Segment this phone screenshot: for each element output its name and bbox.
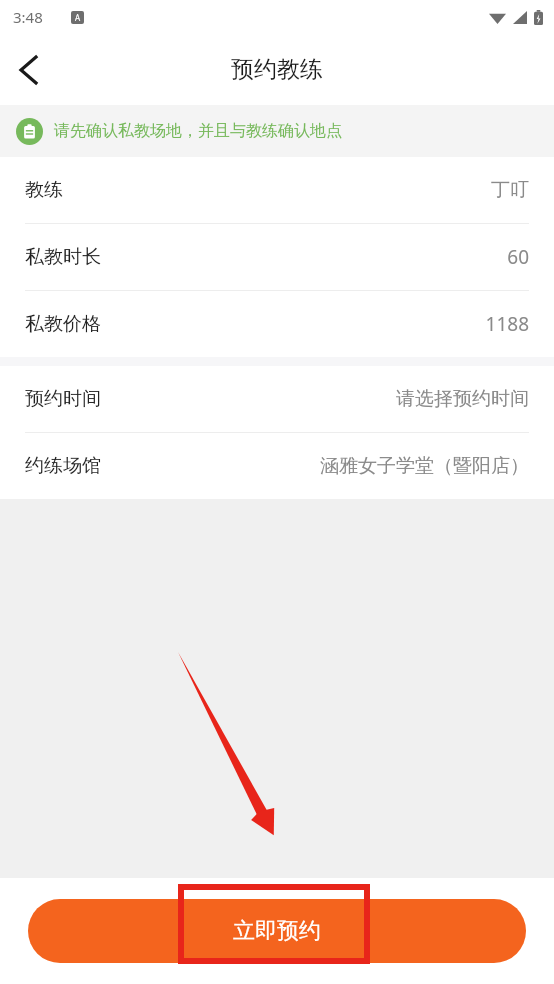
staticText: 立即预约 <box>233 917 321 945</box>
staticText: 1188 <box>485 311 529 337</box>
staticText: 预约时间 <box>25 387 101 411</box>
staticText: 约练场馆 <box>25 454 101 478</box>
staticText: 3:48 <box>13 7 43 27</box>
staticText: 请先确认私教场地，并且与教练确认地点 <box>54 121 342 141</box>
button[interactable]: 私教价格 <box>0 291 554 357</box>
staticText: 请选择预约时间 <box>396 387 529 411</box>
staticText: A <box>75 12 81 23</box>
staticText: 私教价格 <box>25 312 101 336</box>
staticText: 涵雅女子学堂（暨阳店） <box>320 454 529 478</box>
button[interactable]: 约练场馆 <box>0 433 554 499</box>
staticText: 丁叮 <box>491 178 529 202</box>
button[interactable]: 预约时间 <box>0 366 554 432</box>
button[interactable]: 教练 <box>0 157 554 223</box>
button[interactable]: 立即预约 <box>28 899 526 963</box>
staticText: 教练 <box>25 178 63 202</box>
staticText: 60 <box>507 244 529 270</box>
button[interactable]: 私教时长 <box>0 224 554 290</box>
staticText: 私教时长 <box>25 245 101 269</box>
button[interactable]: Back <box>0 42 56 98</box>
staticText: 预约教练 <box>231 55 323 84</box>
